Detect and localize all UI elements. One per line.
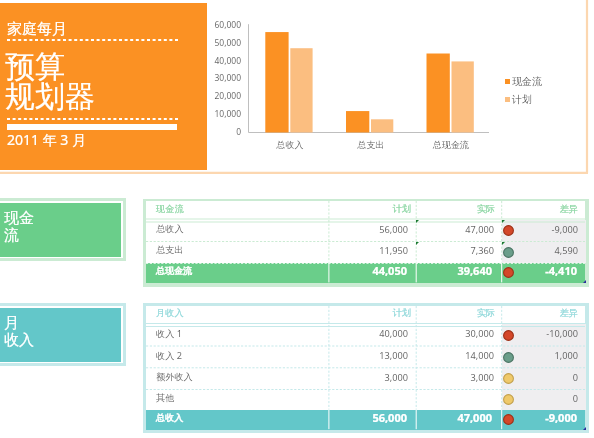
staticText: 44,050 bbox=[317, 263, 407, 278]
staticText: 总收入 bbox=[260, 139, 320, 150]
staticText: 50,000 bbox=[201, 37, 241, 49]
staticText: 差异 bbox=[488, 203, 578, 215]
button[interactable]: Cash flow table bbox=[143, 199, 589, 287]
staticText: 额外收入 bbox=[156, 371, 246, 383]
staticText: 60,000 bbox=[201, 19, 241, 31]
staticText: 3,000 bbox=[318, 371, 408, 384]
staticText: 4,590 bbox=[488, 244, 578, 257]
staticText: 现金流 bbox=[512, 75, 542, 88]
staticText: 总支出 bbox=[341, 139, 401, 150]
staticText: 总支出 bbox=[156, 244, 246, 256]
staticText: 收入 2 bbox=[156, 349, 246, 362]
staticText: 家庭每月 bbox=[7, 20, 67, 39]
staticText: 11,950 bbox=[318, 244, 408, 257]
staticText: 2011 年 3 月 bbox=[7, 130, 86, 149]
button[interactable]: Monthly income table bbox=[143, 303, 589, 433]
staticText: 7,360 bbox=[404, 244, 494, 257]
button[interactable]: Monthly income section bbox=[0, 303, 126, 366]
staticText: 现金 bbox=[4, 209, 34, 228]
staticText: 总现金流 bbox=[421, 139, 481, 150]
staticText: 月收入 bbox=[156, 307, 246, 319]
staticText: 56,000 bbox=[317, 410, 407, 425]
staticText: 现金流 bbox=[156, 203, 246, 215]
staticText: 其他 bbox=[156, 392, 246, 404]
staticText: 预算 bbox=[5, 48, 65, 86]
staticText: 47,000 bbox=[404, 223, 494, 236]
staticText: 收入 bbox=[4, 331, 34, 350]
staticText: 收入 1 bbox=[156, 327, 246, 340]
staticText: 计划 bbox=[321, 203, 411, 215]
staticText: 30,000 bbox=[404, 327, 494, 340]
staticText: 40,000 bbox=[318, 327, 408, 340]
staticText: 计划 bbox=[512, 93, 532, 106]
staticText: 3,000 bbox=[404, 371, 494, 384]
staticText: 规划器 bbox=[5, 78, 95, 116]
staticText: 总收入 bbox=[156, 412, 246, 423]
staticText: 0 bbox=[488, 371, 578, 384]
staticText: 20,000 bbox=[201, 90, 241, 102]
button[interactable]: Cash flow section bbox=[0, 198, 126, 261]
staticText: 47,000 bbox=[402, 410, 492, 425]
staticText: 40,000 bbox=[201, 55, 241, 67]
staticText: 10,000 bbox=[201, 108, 241, 120]
staticText: -9,000 bbox=[487, 410, 577, 425]
staticText: 总现金流 bbox=[156, 265, 246, 276]
staticText: 30,000 bbox=[201, 72, 241, 84]
staticText: 14,000 bbox=[404, 349, 494, 362]
staticText: 实际 bbox=[405, 203, 495, 215]
staticText: 月 bbox=[4, 314, 19, 333]
button[interactable]: Cash flow chart bbox=[211, 3, 587, 173]
staticText: 实际 bbox=[405, 307, 495, 319]
staticText: -4,410 bbox=[487, 263, 577, 278]
button[interactable]: 家庭每月 bbox=[0, 3, 207, 170]
staticText: 计划 bbox=[321, 307, 411, 319]
staticText: 流 bbox=[4, 226, 19, 245]
staticText: 13,000 bbox=[318, 349, 408, 362]
staticText: 差异 bbox=[488, 307, 578, 319]
staticText: -10,000 bbox=[488, 327, 578, 340]
staticText: 总收入 bbox=[156, 223, 246, 235]
staticText: 0 bbox=[488, 392, 578, 405]
staticText: 39,640 bbox=[402, 263, 492, 278]
staticText: -9,000 bbox=[488, 223, 578, 236]
staticText: 0 bbox=[201, 126, 241, 138]
staticText: 1,000 bbox=[488, 349, 578, 362]
staticText: 56,000 bbox=[318, 223, 408, 236]
